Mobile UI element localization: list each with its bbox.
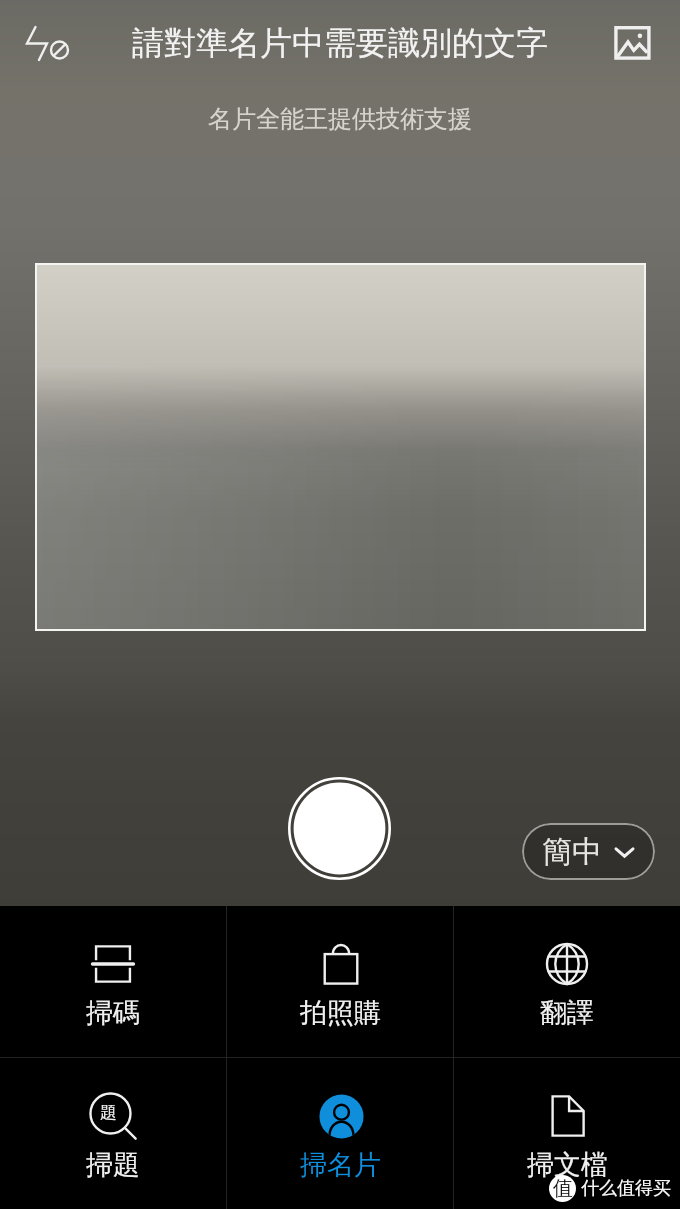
button[interactable]: 拍照購: [227, 906, 453, 1057]
staticText: 翻譯: [540, 996, 594, 1030]
staticText: 拍照購: [300, 996, 381, 1030]
staticText: 掃題: [86, 1148, 140, 1182]
button[interactable]: 簡中: [522, 823, 655, 880]
button[interactable]: 掃名片: [227, 1058, 453, 1209]
staticText: 題: [100, 1102, 117, 1123]
button[interactable]: Gallery: [608, 22, 652, 66]
button[interactable]: Flash off: [18, 18, 80, 80]
staticText: 掃碼: [86, 996, 140, 1030]
staticText: 掃文檔: [527, 1148, 608, 1182]
staticText: 什么值得买: [581, 1177, 671, 1200]
button[interactable]: 題: [0, 1058, 226, 1209]
staticText: 簡中: [542, 833, 602, 871]
staticText: 掃名片: [300, 1148, 381, 1182]
button[interactable]: Shutter: [288, 777, 391, 880]
staticText: 值: [553, 1176, 573, 1201]
staticText: 請對準名片中需要識別的文字: [132, 23, 548, 63]
staticText: 名片全能王提供技術支援: [208, 104, 472, 134]
button[interactable]: 翻譯: [454, 906, 680, 1057]
button[interactable]: 掃碼: [0, 906, 226, 1057]
button[interactable]: 掃文檔: [454, 1058, 680, 1209]
